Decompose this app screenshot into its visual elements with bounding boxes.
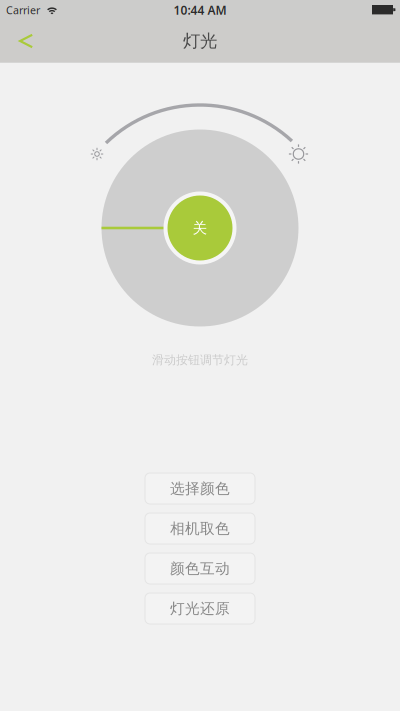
staticText: Carrier bbox=[6, 3, 40, 17]
staticText: 滑动按钮调节灯光 bbox=[152, 353, 248, 367]
staticText: 关 bbox=[192, 219, 207, 237]
button[interactable]: 灯光还原 bbox=[145, 593, 255, 624]
staticText: 颜色互动 bbox=[170, 559, 230, 577]
button[interactable]: Back bbox=[0, 21, 47, 61]
button[interactable]: 颜色互动 bbox=[145, 553, 255, 584]
staticText: 灯光还原 bbox=[170, 599, 230, 617]
button[interactable]: 相机取色 bbox=[145, 513, 255, 544]
staticText: 10:44 AM bbox=[173, 2, 226, 18]
button[interactable]: 选择颜色 bbox=[145, 473, 255, 504]
staticText: 灯光 bbox=[183, 30, 217, 52]
staticText: 选择颜色 bbox=[170, 479, 230, 497]
staticText: 相机取色 bbox=[170, 519, 230, 537]
